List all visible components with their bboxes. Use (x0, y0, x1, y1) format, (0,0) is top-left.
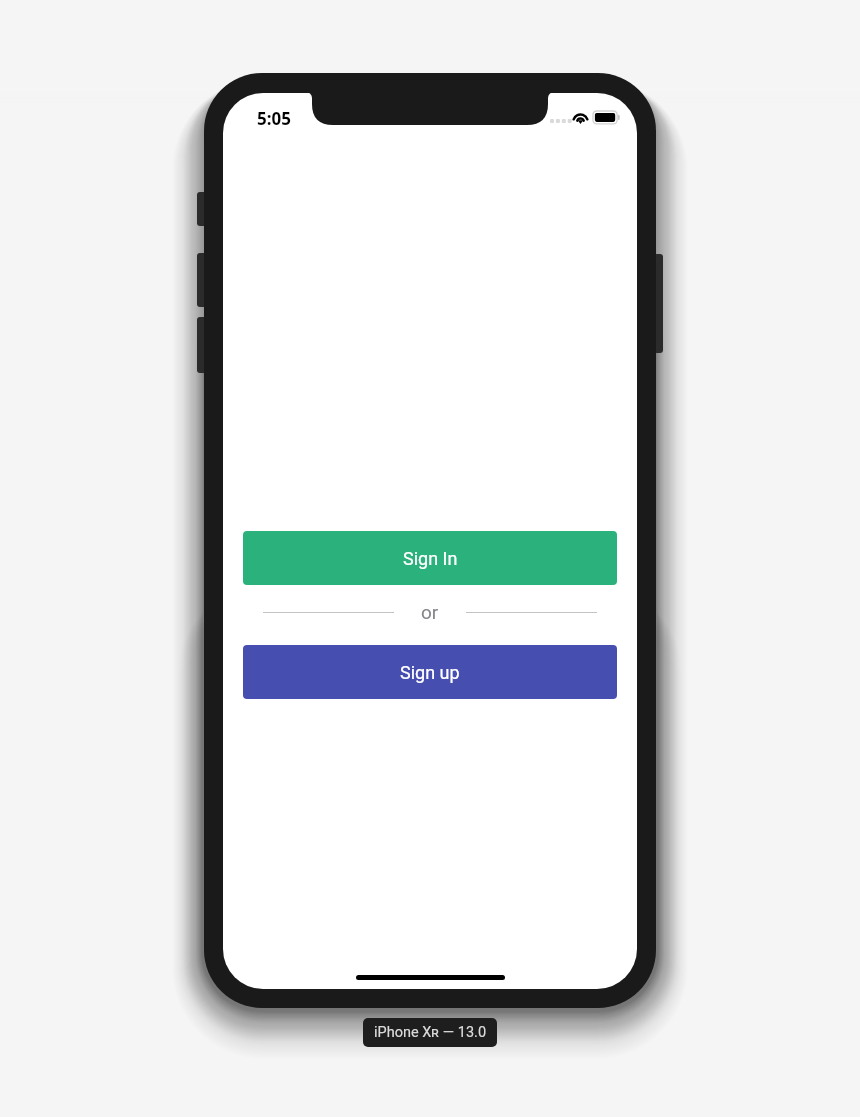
button[interactable]: Sign In (243, 531, 617, 585)
button[interactable]: Sign up (243, 645, 617, 699)
other: Home indicator (356, 975, 505, 980)
staticText: Sign up (400, 662, 460, 683)
staticText: Sign In (403, 548, 458, 569)
button[interactable]: iPhone Xʀ — 13.0 (363, 1018, 497, 1047)
staticText: or (421, 601, 439, 623)
staticText: iPhone Xʀ — 13.0 (374, 1024, 487, 1041)
other: Wi-Fi (572, 109, 589, 123)
staticText: 5:05 (257, 107, 291, 130)
